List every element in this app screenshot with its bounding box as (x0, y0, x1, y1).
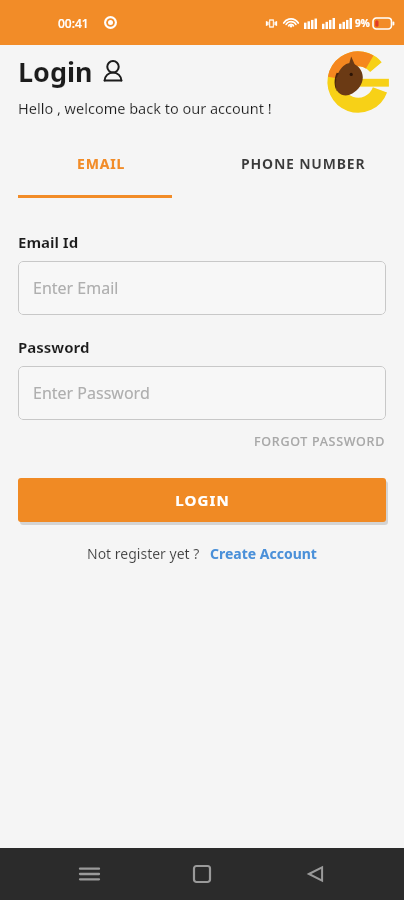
button[interactable]: Create Account (210, 544, 317, 563)
button[interactable]: Back (291, 850, 339, 898)
staticText: Enter Password (33, 382, 150, 404)
staticText: PHONE NUMBER (241, 154, 366, 173)
staticText: Password (18, 337, 90, 357)
staticText: Create Account (210, 544, 317, 563)
staticText: EMAIL (77, 154, 126, 173)
staticText: Login (18, 53, 93, 90)
button[interactable]: Recent apps (65, 850, 113, 898)
button[interactable]: Enter Password (18, 366, 386, 420)
staticText: Enter Email (33, 277, 119, 299)
staticText: Not register yet ? (87, 544, 200, 563)
staticText: Hello , welcome back to our account ! (18, 98, 272, 118)
button[interactable]: LOGIN (18, 478, 386, 522)
button[interactable]: FORGOT PASSWORD (254, 433, 386, 450)
staticText: LOGIN (175, 490, 230, 510)
button[interactable]: Enter Email (18, 261, 386, 315)
button[interactable]: Home (178, 850, 226, 898)
button[interactable]: EMAIL (0, 148, 202, 179)
staticText: Email Id (18, 232, 79, 252)
staticText: 9% (355, 16, 370, 30)
staticText: FORGOT PASSWORD (254, 433, 386, 450)
staticText: 00:41 (58, 15, 89, 31)
button[interactable]: PHONE NUMBER (202, 148, 404, 179)
